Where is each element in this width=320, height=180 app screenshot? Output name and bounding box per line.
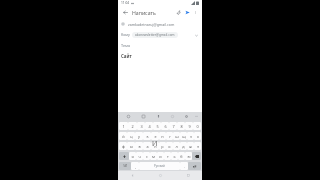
staticText: й (122, 134, 125, 139)
staticText: н (161, 134, 164, 139)
button[interactable]: !#1 (119, 162, 131, 170)
button[interactable]: в (135, 142, 143, 150)
button[interactable]: с (143, 152, 150, 160)
button[interactable]: р (159, 142, 166, 150)
button[interactable]: 6 (161, 122, 169, 130)
staticText: п (154, 144, 157, 149)
button[interactable]: 7 (169, 122, 177, 130)
button[interactable]: о (166, 142, 173, 150)
button[interactable]: Translate (165, 112, 179, 121)
button[interactable]: zamkadetnaruj@gmail.com (118, 19, 202, 29)
button[interactable]: Attach file (174, 8, 183, 17)
staticText: м (152, 154, 155, 159)
button[interactable]: ц (127, 132, 135, 140)
staticText: ш (175, 134, 179, 139)
button[interactable]: Sticker (136, 112, 151, 121)
button[interactable]: Recents (174, 171, 202, 180)
button[interactable]: г (166, 132, 173, 140)
button[interactable]: б (178, 152, 185, 160)
staticText: Русский (154, 164, 165, 168)
staticText: х (197, 134, 199, 139)
staticText: и (159, 154, 162, 159)
button[interactable]: я (129, 152, 136, 160)
staticText: я (131, 154, 134, 159)
button[interactable]: 9 (185, 122, 193, 130)
button[interactable]: Space (139, 162, 180, 170)
staticText: !#1 (123, 164, 128, 168)
button[interactable]: н (159, 132, 166, 140)
button[interactable]: ы (127, 142, 135, 150)
button[interactable]: Backspace (192, 152, 201, 160)
button[interactable]: у (135, 132, 143, 140)
button[interactable]: 4 (145, 122, 153, 130)
button[interactable]: з (187, 132, 194, 140)
button[interactable]: ф (119, 142, 127, 150)
button[interactable]: к (143, 132, 151, 140)
staticText: 1 (122, 124, 125, 129)
button[interactable]: ю (185, 152, 192, 160)
button[interactable]: ь (171, 152, 178, 160)
button[interactable]: п (151, 142, 159, 150)
staticText: д (182, 144, 185, 149)
staticText: с (146, 154, 148, 159)
button[interactable]: Back (121, 8, 130, 17)
staticText: Кому (121, 32, 130, 37)
button[interactable]: и (157, 152, 164, 160)
button[interactable]: Send (183, 8, 192, 17)
button[interactable]: й (119, 132, 127, 140)
button[interactable]: More options (192, 9, 199, 16)
button[interactable]: 2 (128, 122, 137, 130)
staticText: Тема (121, 43, 131, 48)
button[interactable]: ш (173, 132, 180, 140)
button[interactable]: Тема (118, 40, 202, 50)
button[interactable]: Settings (179, 112, 193, 121)
staticText: 11:04 (121, 1, 130, 5)
staticText: ч (138, 154, 141, 159)
button[interactable]: abcnewsletter@gmail.com (132, 32, 178, 38)
button[interactable]: Emoji (121, 112, 136, 121)
staticText: г (169, 134, 171, 139)
button[interactable]: 0 (193, 122, 201, 130)
button[interactable]: 5 (153, 122, 161, 130)
button[interactable]: . (180, 162, 188, 170)
button[interactable]: л (173, 142, 180, 150)
staticText: ф (122, 144, 125, 149)
button[interactable]: ч (136, 152, 143, 160)
staticText: ж (189, 144, 192, 149)
staticText: И (152, 139, 158, 147)
button[interactable]: 3 (137, 122, 145, 130)
button[interactable]: т (164, 152, 171, 160)
button[interactable]: а (143, 142, 151, 150)
button[interactable]: Shift (119, 152, 129, 160)
button[interactable]: 8 (177, 122, 185, 130)
staticText: 0 (196, 124, 199, 129)
staticText: 9 (188, 124, 191, 129)
button[interactable]: ж (187, 142, 194, 150)
button[interactable]: Hide keyboard (193, 112, 199, 121)
button[interactable]: , (131, 162, 139, 170)
button[interactable]: Кому (118, 29, 202, 40)
button[interactable]: м (150, 152, 157, 160)
button[interactable]: э (194, 142, 201, 150)
staticText: . (184, 164, 185, 169)
staticText: Сайт (121, 53, 132, 59)
staticText: о (168, 144, 171, 149)
staticText: 4 (148, 124, 151, 129)
button[interactable]: Сайт (118, 50, 202, 62)
staticText: р (161, 144, 164, 149)
button[interactable]: Expand recipients (193, 32, 199, 38)
staticText: к (146, 134, 149, 139)
button[interactable]: 1 (119, 122, 128, 130)
button[interactable]: х (194, 132, 201, 140)
button[interactable]: Microphone (151, 112, 165, 121)
button[interactable]: д (180, 142, 187, 150)
staticText: щ (182, 134, 186, 139)
staticText: л (175, 144, 178, 149)
staticText: zamkadetnaruj@gmail.com (128, 22, 175, 27)
button[interactable]: е (151, 132, 159, 140)
staticText: ь (173, 154, 176, 159)
button[interactable]: Enter (188, 162, 201, 170)
button[interactable]: щ (180, 132, 187, 140)
